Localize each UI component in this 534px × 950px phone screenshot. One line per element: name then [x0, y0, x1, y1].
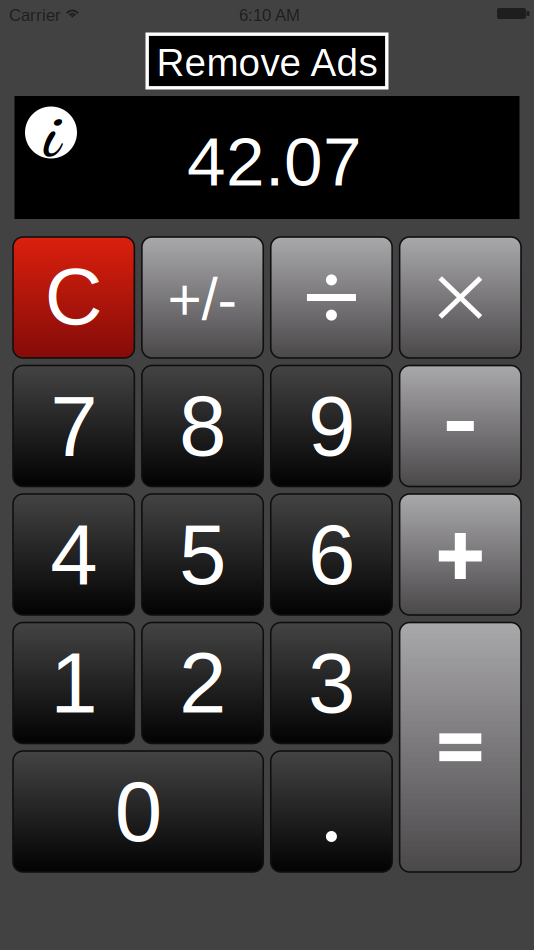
button[interactable]: Multiply: [400, 237, 521, 358]
button[interactable]: 3: [271, 622, 392, 743]
button[interactable]: 9: [271, 365, 392, 486]
button[interactable]: Divide: [271, 237, 392, 358]
button[interactable]: Remove Ads: [145, 32, 388, 89]
button[interactable]: Info: [23, 104, 79, 160]
staticText: 1: [50, 635, 97, 731]
staticText: +/-: [168, 267, 238, 332]
staticText: Remove Ads: [156, 41, 377, 84]
button[interactable]: 8: [142, 365, 263, 486]
staticText: 2: [179, 635, 226, 731]
button[interactable]: 5: [142, 494, 263, 615]
button[interactable]: 2: [142, 622, 263, 743]
button[interactable]: Equals: [400, 622, 521, 872]
button[interactable]: 7: [13, 365, 134, 486]
staticText: 42.07: [187, 123, 362, 200]
button[interactable]: 6: [271, 494, 392, 615]
button[interactable]: 0: [13, 751, 263, 872]
button[interactable]: Plus: [400, 494, 521, 615]
button[interactable]: Plus or minus: [142, 237, 263, 358]
button[interactable]: 4: [13, 494, 134, 615]
staticText: 8: [179, 378, 226, 474]
staticText: 9: [308, 378, 355, 474]
staticText: 7: [50, 378, 97, 474]
staticText: 5: [179, 507, 226, 602]
staticText: i: [44, 93, 60, 173]
staticText: 6:10 AM: [239, 6, 300, 25]
button[interactable]: Decimal point: [271, 751, 392, 872]
button[interactable]: 1: [13, 622, 134, 743]
staticText: C: [45, 252, 103, 341]
staticText: 4: [50, 507, 97, 602]
staticText: 3: [308, 635, 355, 731]
staticText: Carrier: [9, 6, 61, 25]
staticText: 0: [115, 764, 162, 859]
button[interactable]: Minus: [400, 365, 521, 486]
button[interactable]: C: [13, 237, 134, 358]
staticText: 6: [308, 507, 355, 602]
